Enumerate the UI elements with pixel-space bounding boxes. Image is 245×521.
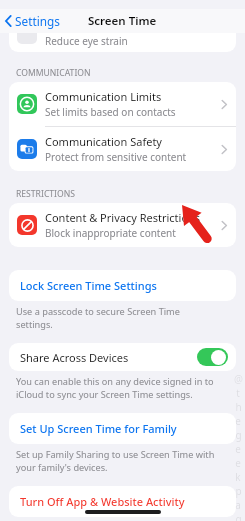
staticText: Content & Privacy Restrictions — [45, 210, 201, 225]
staticText: COMMUNICATION — [16, 67, 91, 79]
button[interactable]: Lock Screen Time Settings — [9, 270, 236, 301]
staticText: Reduce eye strain — [45, 34, 128, 48]
staticText: a — [235, 498, 241, 512]
staticText: Communication Safety — [45, 134, 162, 149]
other: Share Across Devices — [197, 348, 228, 366]
button[interactable]: Reduce eye strain — [9, 33, 236, 52]
staticText: k — [235, 470, 241, 484]
staticText: e — [235, 456, 241, 470]
staticText: e — [235, 442, 241, 456]
staticText: Settings — [15, 13, 60, 29]
staticText: Communication Limits — [45, 89, 162, 104]
other: Back — [5, 15, 12, 27]
staticText: RESTRICTIONS — [16, 188, 75, 200]
staticText: Screen Time — [88, 13, 157, 29]
button[interactable]: Communication Limits — [9, 82, 236, 127]
staticText: h — [235, 400, 242, 414]
staticText: Lock Screen Time Settings — [20, 278, 157, 293]
staticText: Use a passcode to secure Screen Time set… — [16, 305, 215, 330]
button[interactable]: Share Across Devices — [9, 343, 236, 371]
button[interactable]: Back — [5, 13, 60, 29]
staticText: You can enable this on any device signed… — [16, 375, 215, 400]
staticText: Set Up Screen Time for Family — [20, 421, 177, 436]
button[interactable]: Communication Safety — [9, 127, 236, 171]
staticText: g — [235, 428, 242, 442]
staticText: Set up Family Sharing to use Screen Time… — [16, 448, 215, 473]
staticText: Share Across Devices — [20, 350, 197, 365]
staticText: Turn Off App & Website Activity — [20, 494, 185, 509]
staticText: g — [235, 512, 242, 521]
staticText: p — [235, 484, 242, 498]
staticText: t — [236, 386, 240, 400]
button[interactable]: Content & Privacy Restrictions — [9, 203, 236, 247]
staticText: Block inappropriate content — [45, 226, 176, 240]
staticText: @ — [234, 372, 243, 386]
button[interactable]: Set Up Screen Time for Family — [9, 413, 236, 444]
staticText: Protect from sensitive content — [45, 150, 187, 164]
staticText: Set limits based on contacts — [45, 105, 176, 119]
button[interactable]: Turn Off App & Website Activity — [9, 486, 236, 517]
staticText: e — [235, 414, 241, 428]
